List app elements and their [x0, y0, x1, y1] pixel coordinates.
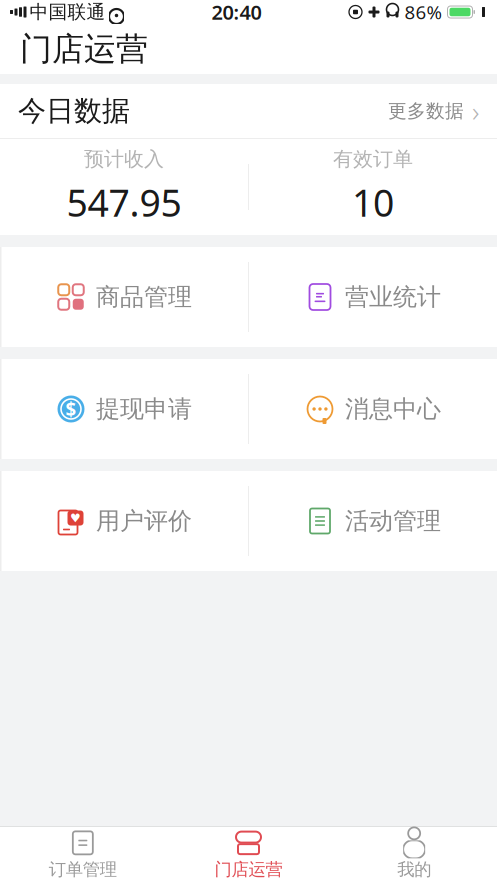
button[interactable]: 活动管理: [249, 471, 497, 571]
staticText: 商品管理: [96, 282, 192, 312]
staticText: 547.95: [66, 177, 181, 227]
button[interactable]: 今日数据: [0, 84, 497, 138]
button[interactable]: $: [0, 359, 248, 459]
staticText: 86%: [404, 0, 442, 24]
staticText: 有效订单: [333, 147, 413, 171]
button[interactable]: 商品管理: [0, 247, 248, 347]
staticText: 订单管理: [49, 859, 117, 880]
staticText: 门店运营: [214, 859, 282, 880]
staticText: 更多数据: [388, 99, 464, 122]
button[interactable]: 消息中心: [249, 359, 497, 459]
staticText: $: [65, 397, 76, 421]
staticText: 消息中心: [345, 394, 441, 424]
staticText: 我的: [397, 859, 431, 880]
staticText: ♥: [70, 511, 81, 525]
staticText: 营业统计: [345, 282, 441, 312]
button[interactable]: 门店运营: [166, 827, 331, 883]
staticText: 今日数据: [18, 94, 130, 128]
staticText: 提现申请: [96, 394, 192, 424]
staticText: 预计收入: [84, 147, 164, 171]
staticText: 中国联通: [29, 0, 105, 23]
button[interactable]: 我的: [331, 827, 497, 883]
staticText: ›: [472, 92, 479, 130]
button[interactable]: 订单管理: [0, 827, 166, 883]
button[interactable]: ♥: [0, 471, 248, 571]
staticText: 门店运营: [20, 29, 148, 69]
staticText: 用户评价: [96, 506, 192, 536]
staticText: 活动管理: [345, 506, 441, 536]
staticText: 10: [352, 177, 394, 227]
button[interactable]: 营业统计: [249, 247, 497, 347]
staticText: 20:40: [211, 0, 261, 25]
